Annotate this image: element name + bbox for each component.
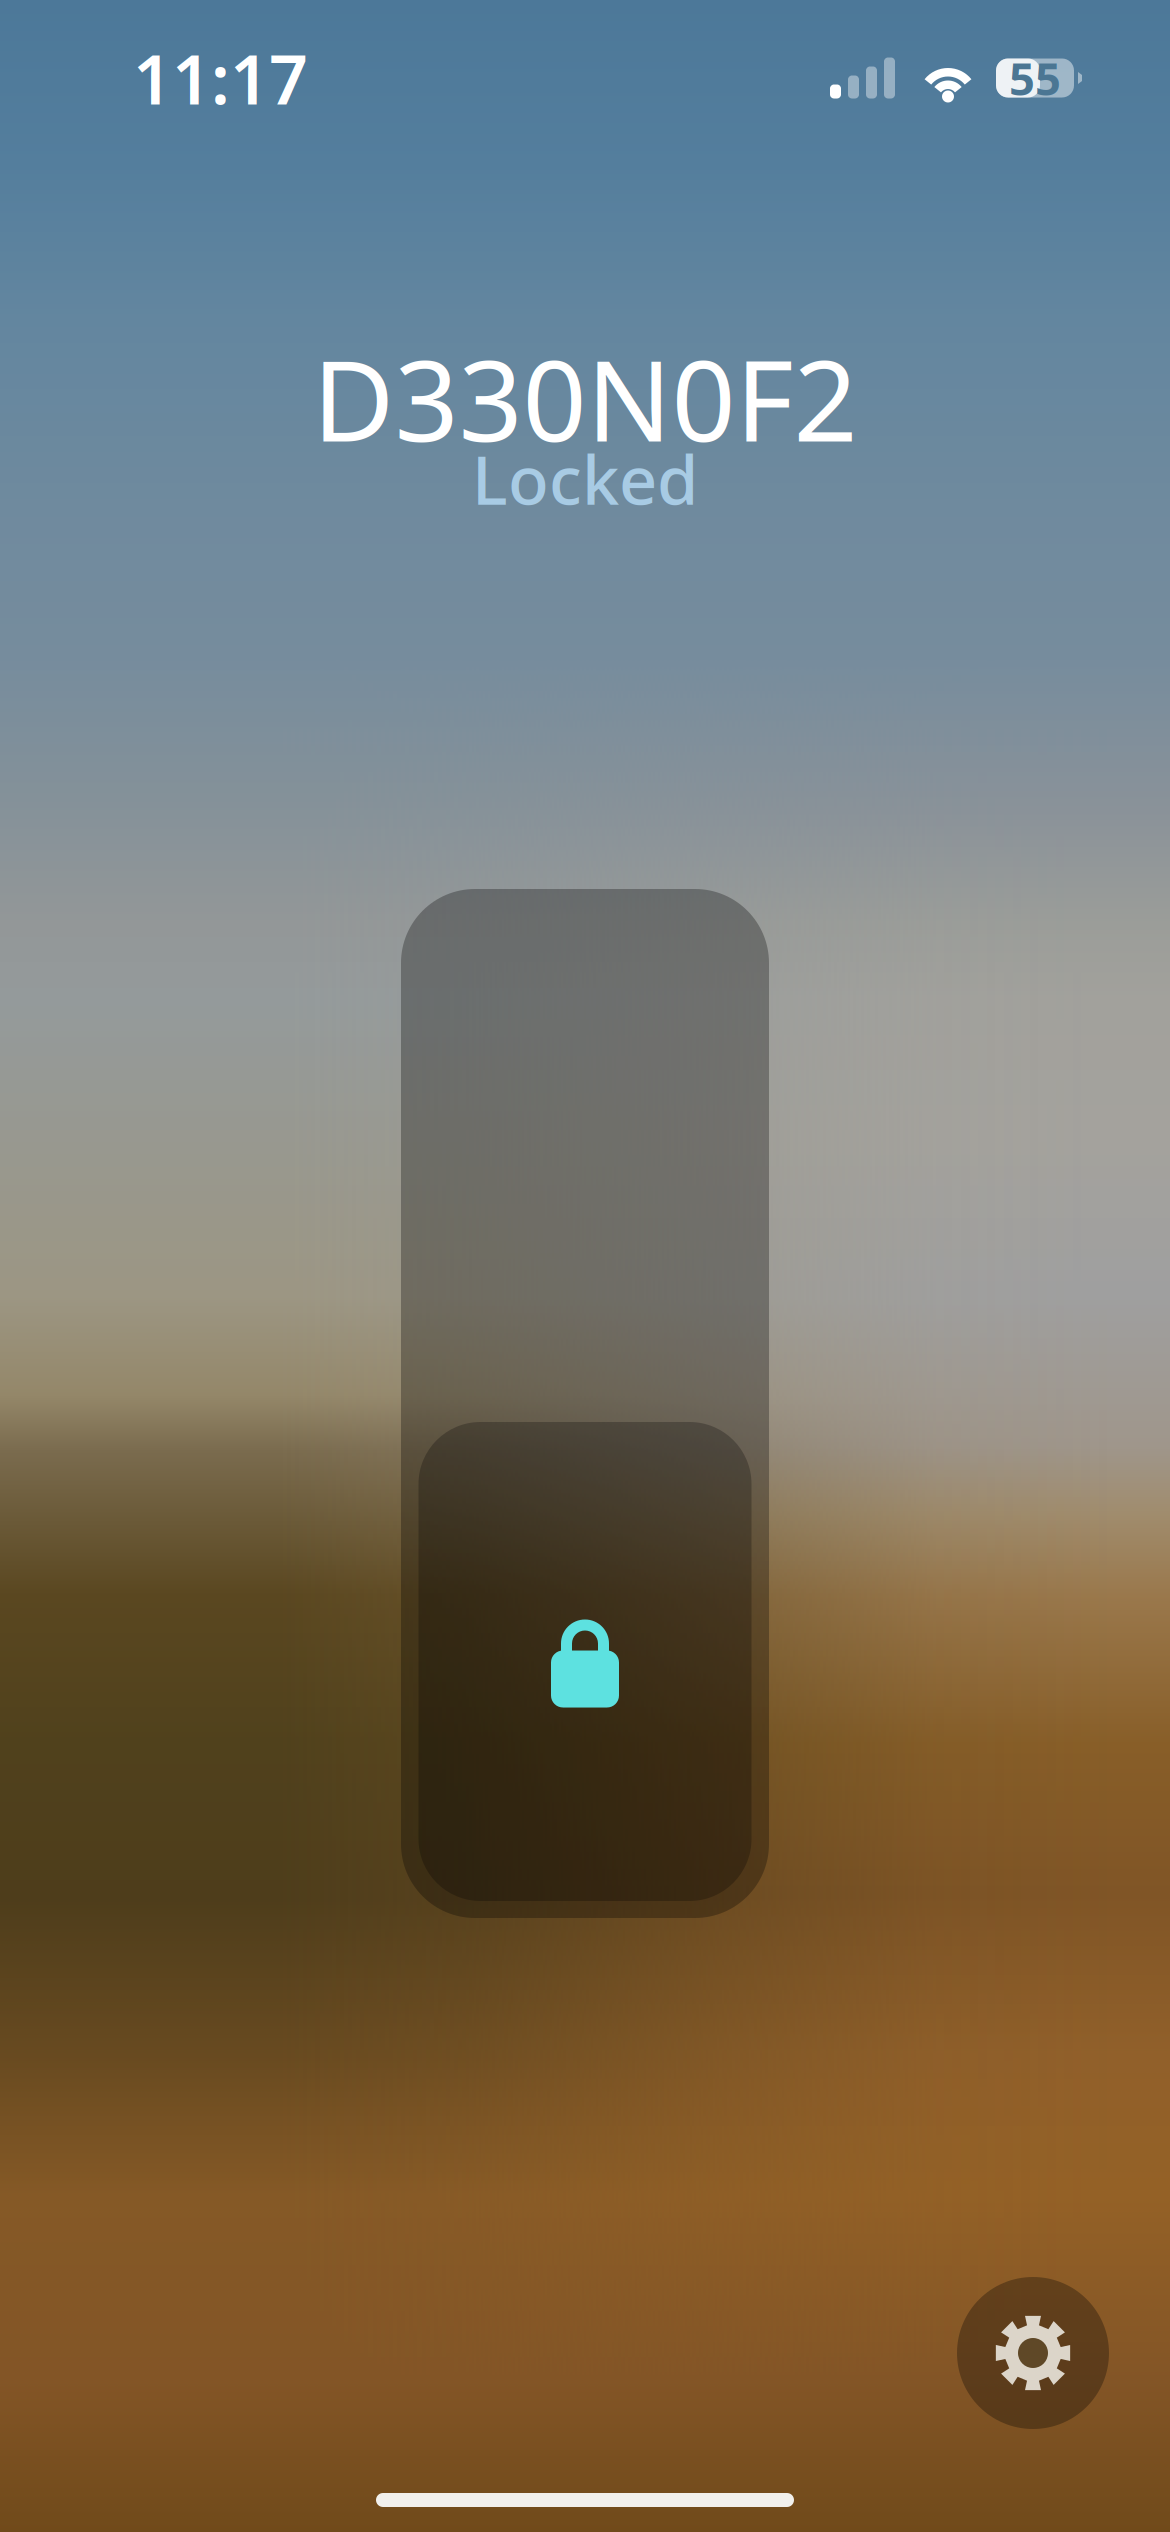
staticText: D330N0F2	[312, 324, 857, 472]
staticText: 55	[1009, 48, 1061, 108]
staticText: 11:17	[133, 33, 308, 123]
button[interactable]	[401, 889, 769, 1918]
staticText: Locked	[472, 435, 698, 523]
button[interactable]: Settings	[957, 2277, 1109, 2429]
